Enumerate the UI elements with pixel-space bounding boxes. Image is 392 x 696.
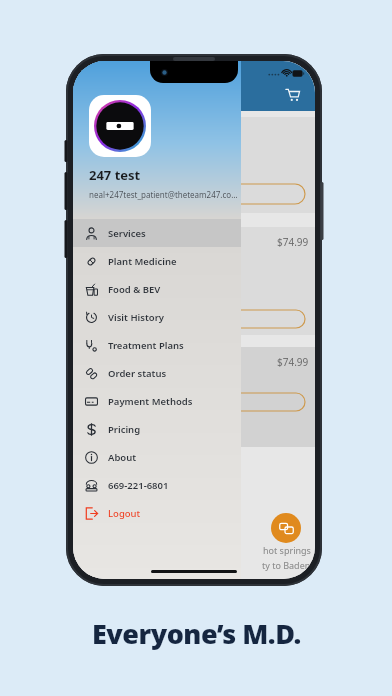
button[interactable]: Chat [271,513,301,543]
staticText: $74.99 [277,235,309,249]
staticText: amine trokies [175,159,230,171]
staticText: ustin, [169,249,195,261]
button[interactable]: Plant Medicine [73,247,241,275]
staticText: Food & BEV [108,283,161,296]
staticText: Payment Methods [108,395,193,408]
staticText: $74.99 [198,126,230,140]
staticText: Services [108,227,146,240]
staticText: $74.99 [277,355,309,369]
staticText: 10:00 [84,67,108,79]
button[interactable]: Order status [73,359,241,387]
button[interactable]: Logout [73,499,241,527]
button[interactable]: About [73,443,241,471]
staticText: ty to Baden [262,559,311,571]
staticText: BG tinctures, [175,174,227,186]
button[interactable] [89,95,151,157]
button[interactable]: Pricing [73,415,241,443]
staticText: CBD can help [175,144,229,156]
staticText: 247 test [89,166,141,184]
staticText: Visit History [108,311,164,324]
staticText: Logout [108,507,141,520]
button[interactable]: Food & BEV [73,275,241,303]
staticText: hot springs [263,544,311,556]
staticText: Treatment Plans [108,339,184,352]
button[interactable]: 669-221-6801 [73,471,241,499]
button[interactable]: Services [73,219,241,247]
staticText: neal+247test_patient@theteam247.co… [89,189,238,200]
button[interactable]: Treatment Plans [73,331,241,359]
staticText: Order status [108,367,167,380]
staticText: About [108,451,137,464]
button[interactable]: Cart [279,81,305,107]
staticText: Pricing [108,423,141,436]
staticText: Plant Medicine [108,255,177,268]
button[interactable]: Visit History [73,303,241,331]
button[interactable]: Payment Methods [73,387,241,415]
staticText: Everyone’s M.D. [92,615,301,652]
staticText: 669-221-6801 [108,479,169,492]
